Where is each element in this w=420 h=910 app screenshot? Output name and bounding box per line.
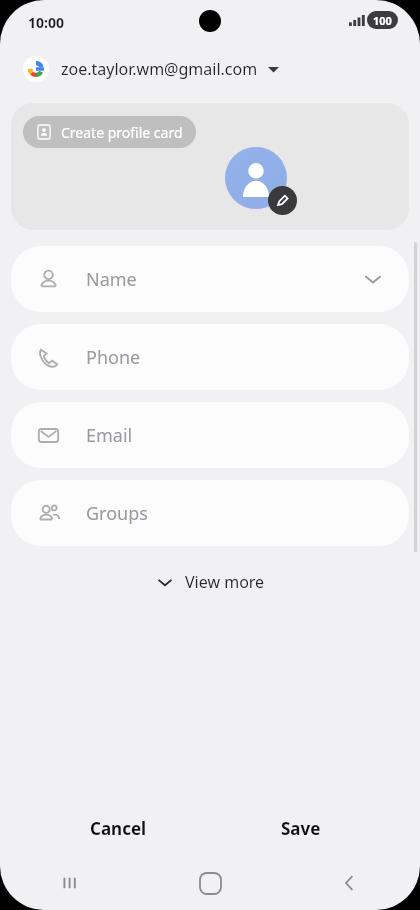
staticText: View more — [185, 571, 265, 593]
button[interactable]: Email — [11, 402, 409, 468]
staticText: Name — [86, 267, 137, 292]
button[interactable]: zoe.taylor.wm@gmail.com — [0, 50, 420, 88]
staticText: 100 — [373, 13, 392, 28]
staticText: Email — [86, 423, 133, 448]
staticText: Phone — [86, 345, 141, 370]
button[interactable]: Save — [249, 808, 353, 848]
staticText: Groups — [86, 501, 148, 526]
button[interactable]: Edit photo — [225, 147, 297, 219]
staticText: 10:00 — [28, 13, 64, 32]
button[interactable]: Name — [11, 246, 409, 312]
staticText: Create profile card — [61, 123, 183, 142]
staticText: Save — [281, 817, 321, 840]
button[interactable]: Back — [280, 860, 420, 906]
button[interactable]: Cancel — [64, 808, 172, 848]
staticText: zoe.taylor.wm@gmail.com — [61, 58, 258, 80]
button[interactable]: Home — [140, 860, 280, 906]
button[interactable]: Recents — [0, 860, 140, 906]
staticText: Cancel — [90, 817, 147, 840]
button[interactable]: Groups — [11, 480, 409, 546]
button[interactable]: Create profile card — [23, 116, 196, 148]
button[interactable]: Phone — [11, 324, 409, 390]
button[interactable]: View more — [142, 565, 279, 599]
